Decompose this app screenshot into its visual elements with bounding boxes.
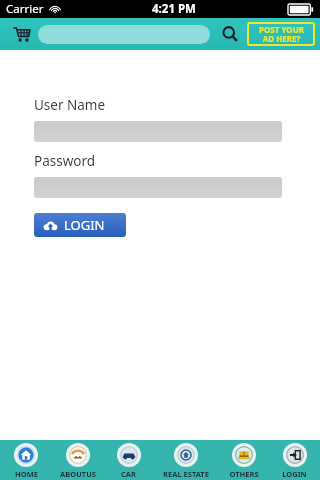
staticText: REAL ESTATE [163, 469, 209, 479]
button[interactable]: CAR [103, 440, 154, 480]
button[interactable]: POST YOUR AD HERE? [247, 22, 315, 46]
staticText: 4:21 PM [152, 1, 196, 17]
button[interactable]: REAL ESTATE [154, 440, 218, 480]
button[interactable]: Search field [38, 25, 210, 44]
button[interactable]: Cart [8, 21, 34, 47]
staticText: LOGIN [282, 469, 307, 479]
staticText: CAR [121, 469, 136, 479]
button[interactable]: Search [218, 22, 242, 46]
staticText: LOGIN [64, 216, 105, 234]
button[interactable]: LOGIN [34, 213, 126, 237]
staticText: Carrier [6, 1, 44, 17]
staticText: HOME [15, 469, 38, 479]
button[interactable]: HOME [0, 440, 52, 480]
staticText: User Name [34, 96, 106, 114]
staticText: Password [34, 152, 96, 170]
button[interactable]: LOGIN [269, 440, 320, 480]
staticText: ABOUTUS [60, 469, 96, 479]
staticText: POST YOUR AD HERE? [259, 24, 304, 45]
staticText: OTHERS [229, 469, 259, 479]
button[interactable]: ABOUTUS [52, 440, 103, 480]
button[interactable]: OTHERS [218, 440, 269, 480]
